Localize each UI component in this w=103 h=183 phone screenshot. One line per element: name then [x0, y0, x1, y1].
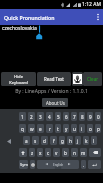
button[interactable]: . [81, 160, 86, 169]
button[interactable]: 2 [28, 112, 35, 121]
button[interactable]: u [71, 124, 77, 133]
staticText: c [47, 150, 50, 156]
staticText: Quick Pronunciation [4, 14, 55, 21]
button[interactable]: About Us [42, 98, 68, 107]
button[interactable]: c [45, 148, 51, 157]
staticText: t [57, 126, 59, 132]
staticText: 0 [97, 114, 100, 120]
staticText: k [85, 138, 88, 144]
button[interactable]: v [53, 148, 60, 157]
button[interactable]: z [29, 148, 35, 157]
button[interactable]: g [59, 136, 65, 145]
staticText: English [53, 163, 64, 167]
staticText: 7 [73, 114, 76, 120]
button[interactable]: t [55, 124, 61, 133]
button[interactable]: 4 [46, 112, 53, 121]
button[interactable]: 0 [95, 112, 101, 121]
staticText: 3 [39, 114, 42, 120]
button[interactable]: o [87, 124, 93, 133]
staticText: e [39, 126, 42, 132]
button[interactable]: Read Text [37, 72, 71, 86]
button[interactable]: 6 [63, 112, 69, 121]
button[interactable]: r [46, 124, 53, 133]
staticText: d [43, 138, 46, 144]
staticText: p [97, 126, 100, 132]
staticText: b [64, 150, 67, 156]
staticText: 4 [48, 114, 51, 120]
staticText: q [21, 126, 24, 132]
button[interactable]: 3 [37, 112, 44, 121]
staticText: l [93, 138, 95, 144]
button[interactable]: e [37, 124, 44, 133]
button[interactable]: Speak [72, 72, 83, 86]
button[interactable]: 9 [87, 112, 93, 121]
staticText: g [61, 138, 64, 144]
button[interactable]: h [67, 136, 73, 145]
button[interactable]: Backspace [89, 148, 101, 157]
staticText: a [25, 138, 28, 144]
button[interactable]: l [91, 136, 97, 145]
staticText: 9 [89, 114, 92, 120]
button[interactable]: q [19, 124, 26, 133]
staticText: Clear [87, 76, 99, 82]
staticText: By : LineApps / Version : 1.1.0.1 [0, 88, 103, 95]
button[interactable]: Emoji [30, 160, 35, 169]
staticText: 5 [57, 114, 60, 120]
staticText: 6 [65, 114, 68, 120]
button[interactable]: a [23, 136, 30, 145]
button[interactable]: p [95, 124, 101, 133]
button[interactable]: 1 [19, 112, 26, 121]
button[interactable]: More options [93, 9, 103, 25]
button[interactable]: d [41, 136, 48, 145]
staticText: w [30, 126, 34, 132]
staticText: s [34, 138, 37, 144]
button[interactable]: m [80, 148, 87, 157]
staticText: 2 [30, 114, 33, 120]
staticText: czechoslovakia [2, 25, 37, 32]
staticText: o [89, 126, 92, 132]
button[interactable]: x [37, 148, 43, 157]
staticText: f [53, 138, 55, 144]
button[interactable]: Sym [19, 160, 28, 169]
button[interactable]: k [83, 136, 89, 145]
staticText: . [83, 162, 85, 168]
staticText: 1:12 AM [82, 1, 101, 8]
button[interactable]: f [50, 136, 57, 145]
staticText: u [73, 126, 76, 132]
staticText: n [73, 150, 76, 156]
button[interactable]: 7 [71, 112, 77, 121]
button[interactable]: y [63, 124, 69, 133]
button[interactable]: b [62, 148, 69, 157]
staticText: 8 [81, 114, 84, 120]
button[interactable]: n [71, 148, 78, 157]
button[interactable]: Hide Keyboard [1, 72, 36, 86]
button[interactable]: Clear [83, 72, 102, 86]
staticText: Sym [20, 162, 28, 167]
staticText: i [81, 126, 83, 132]
button[interactable]: i [79, 124, 85, 133]
button[interactable]: w [28, 124, 35, 133]
staticText: Read Text [44, 76, 64, 82]
button[interactable]: Expand keyboard [0, 109, 18, 173]
button[interactable]: 5 [55, 112, 61, 121]
staticText: v [55, 150, 58, 156]
staticText: j [77, 138, 79, 144]
staticText: x [39, 150, 42, 156]
staticText: About Us [46, 100, 65, 106]
staticText: r [49, 126, 51, 132]
staticText: y [65, 126, 68, 132]
button[interactable]: Space [37, 160, 79, 169]
button[interactable]: s [32, 136, 39, 145]
button[interactable]: 8 [79, 112, 85, 121]
button[interactable]: Enter [88, 160, 101, 169]
staticText: z [31, 150, 34, 156]
staticText: Hide Keyboard [9, 74, 28, 85]
button[interactable]: Shift [19, 148, 27, 157]
button[interactable]: j [75, 136, 81, 145]
staticText: 1 [21, 114, 24, 120]
staticText: h [69, 138, 72, 144]
staticText: m [81, 150, 86, 156]
